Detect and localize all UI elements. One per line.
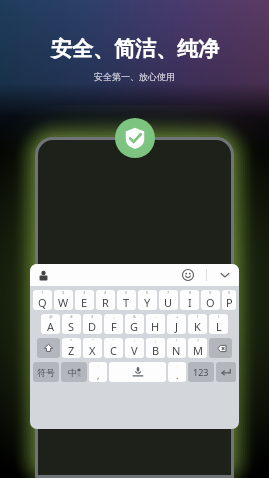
- staticText: 2: [62, 290, 65, 295]
- staticText: Y: [144, 295, 151, 310]
- staticText: K: [194, 319, 201, 334]
- staticText: C: [110, 343, 117, 358]
- button[interactable]: :: [125, 338, 144, 358]
- button[interactable]: (: [188, 314, 207, 334]
- button[interactable]: 6: [138, 290, 157, 310]
- button[interactable]: -: [146, 314, 165, 334]
- button[interactable]: ": [83, 338, 102, 358]
- button[interactable]: 2: [54, 290, 73, 310]
- staticText: ): [218, 314, 220, 319]
- staticText: X: [89, 343, 96, 358]
- staticText: 中: [68, 367, 77, 378]
- button[interactable]: [216, 362, 236, 382]
- staticText: :: [134, 338, 136, 343]
- button[interactable]: 中: [61, 362, 87, 382]
- staticText: *: [70, 338, 73, 343]
- staticText: 安全、简洁、纯净: [51, 36, 219, 62]
- button[interactable]: ': [104, 338, 123, 358]
- button[interactable]: !: [167, 338, 186, 358]
- button[interactable]: 7: [159, 290, 178, 310]
- staticText: ;: [155, 338, 157, 343]
- button[interactable]: 3: [75, 290, 94, 310]
- staticText: 符号: [37, 367, 55, 378]
- button[interactable]: Emoji: [180, 267, 196, 283]
- button[interactable]: @: [41, 314, 60, 334]
- button[interactable]: +: [167, 314, 186, 334]
- staticText: B: [152, 343, 160, 358]
- staticText: ·: [177, 364, 179, 369]
- button[interactable]: ?: [188, 338, 207, 358]
- staticText: D: [88, 319, 97, 334]
- button[interactable]: Input method settings: [36, 268, 50, 282]
- staticText: 5: [125, 290, 128, 295]
- staticText: P: [226, 295, 233, 310]
- staticText: !: [176, 338, 178, 343]
- button[interactable]: Hide keyboard: [217, 267, 233, 283]
- staticText: L: [216, 319, 222, 334]
- button[interactable]: 8: [180, 290, 199, 310]
- staticText: #: [70, 314, 73, 319]
- button[interactable]: 0: [222, 290, 236, 310]
- button[interactable]: [109, 362, 166, 382]
- button[interactable]: &: [125, 314, 144, 334]
- staticText: H: [151, 319, 160, 334]
- button[interactable]: [37, 338, 60, 358]
- staticText: R: [102, 295, 109, 310]
- staticText: &: [133, 314, 136, 319]
- button[interactable]: Security verified: [115, 118, 155, 158]
- staticText: I: [188, 295, 192, 310]
- staticText: -: [155, 314, 157, 319]
- button[interactable]: 5: [117, 290, 136, 310]
- button[interactable]: ;: [146, 338, 165, 358]
- staticText: M: [193, 343, 203, 358]
- staticText: 9: [209, 290, 212, 295]
- staticText: S: [68, 319, 75, 334]
- staticText: N: [172, 343, 181, 358]
- staticText: 安全第一、放心使用: [94, 71, 175, 82]
- staticText: W: [58, 295, 69, 310]
- button[interactable]: ): [209, 314, 228, 334]
- staticText: ": [92, 338, 94, 343]
- button[interactable]: 4: [96, 290, 115, 310]
- button[interactable]: 1: [33, 290, 52, 310]
- button[interactable]: 符号: [33, 362, 59, 382]
- button[interactable]: 9: [201, 290, 220, 310]
- button[interactable]: [209, 338, 232, 358]
- staticText: O: [206, 295, 215, 310]
- staticText: _: [113, 314, 115, 319]
- button[interactable]: *: [62, 338, 81, 358]
- staticText: A: [47, 319, 55, 334]
- staticText: 7: [167, 290, 170, 295]
- staticText: (: [197, 314, 199, 319]
- staticText: G: [130, 319, 139, 334]
- staticText: 4: [104, 290, 107, 295]
- button[interactable]: $: [83, 314, 102, 334]
- staticText: ·: [98, 364, 100, 369]
- staticText: 英: [77, 372, 81, 377]
- button[interactable]: ·: [89, 362, 107, 382]
- staticText: T: [123, 295, 130, 310]
- staticText: F: [111, 319, 117, 334]
- button[interactable]: 123: [188, 362, 214, 382]
- button[interactable]: #: [62, 314, 81, 334]
- staticText: +: [176, 314, 179, 319]
- button[interactable]: ·: [168, 362, 186, 382]
- staticText: 123: [193, 366, 209, 378]
- staticText: E: [81, 295, 88, 310]
- staticText: Q: [38, 295, 47, 310]
- staticText: ': [113, 338, 114, 343]
- staticText: 6: [146, 290, 149, 295]
- staticText: ?: [197, 338, 199, 343]
- button[interactable]: _: [104, 314, 123, 334]
- staticText: 1: [41, 290, 44, 295]
- staticText: $: [91, 314, 94, 319]
- staticText: V: [131, 343, 138, 358]
- staticText: Z: [68, 343, 75, 358]
- staticText: 0: [228, 290, 231, 295]
- staticText: ,: [97, 369, 100, 381]
- staticText: J: [175, 319, 179, 334]
- staticText: 3: [83, 290, 86, 295]
- staticText: U: [164, 295, 173, 310]
- staticText: .: [176, 369, 179, 381]
- staticText: 8: [189, 290, 192, 295]
